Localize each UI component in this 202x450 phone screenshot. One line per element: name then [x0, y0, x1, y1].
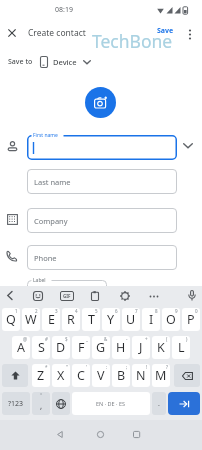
- staticText: ': [86, 364, 88, 370]
- staticText: 3: [55, 308, 58, 314]
- staticText: ": [66, 364, 68, 370]
- button[interactable]: F: [72, 336, 90, 359]
- button[interactable]: [85, 87, 116, 118]
- staticText: X: [57, 367, 65, 384]
- button[interactable]: ?123: [2, 392, 30, 415]
- staticText: B: [117, 367, 126, 384]
- button[interactable]: [8, 29, 16, 37]
- staticText: 0: [195, 308, 198, 314]
- button[interactable]: I: [142, 308, 160, 331]
- staticText: ): [186, 336, 188, 342]
- staticText: Save to: [8, 57, 33, 67]
- button[interactable]: T: [82, 308, 100, 331]
- button[interactable]: P: [182, 308, 200, 331]
- staticText: 5: [95, 308, 98, 314]
- button[interactable]: Save: [157, 26, 174, 36]
- button[interactable]: [7, 291, 13, 300]
- staticText: L: [178, 339, 185, 356]
- button[interactable]: EN · DE · ES: [72, 392, 150, 415]
- button[interactable]: L: [172, 336, 190, 359]
- staticText: Company: [34, 216, 68, 226]
- staticText: ?: [166, 364, 168, 370]
- button[interactable]: Company: [27, 208, 177, 233]
- button[interactable]: V: [92, 364, 110, 387]
- staticText: T: [88, 311, 95, 328]
- button[interactable]: S: [32, 336, 50, 359]
- button[interactable]: [91, 291, 99, 301]
- button[interactable]: O: [162, 308, 180, 331]
- staticText: #: [45, 336, 48, 342]
- button[interactable]: N: [132, 364, 150, 387]
- staticText: ;: [126, 364, 128, 370]
- staticText: J: [139, 339, 143, 356]
- staticText: Y: [107, 311, 115, 328]
- button[interactable]: Z: [32, 364, 50, 387]
- staticText: .: [158, 399, 160, 409]
- button[interactable]: E: [42, 308, 60, 331]
- staticText: Create contact: [28, 27, 86, 39]
- staticText: ,: [40, 400, 43, 411]
- button[interactable]: A: [12, 336, 30, 359]
- button[interactable]: [52, 392, 70, 415]
- button[interactable]: Device: [40, 52, 91, 72]
- staticText: *: [45, 364, 48, 370]
- button[interactable]: [149, 295, 159, 298]
- button[interactable]: [174, 364, 200, 387]
- button[interactable]: Phone: [27, 245, 177, 270]
- staticText: Z: [37, 367, 45, 384]
- staticText: @: [23, 336, 28, 342]
- button[interactable]: Y: [102, 308, 120, 331]
- staticText: +: [145, 336, 148, 342]
- staticText: V: [97, 367, 105, 384]
- button[interactable]: [188, 29, 192, 40]
- staticText: First name: [33, 132, 58, 139]
- button[interactable]: H: [112, 336, 130, 359]
- staticText: R: [67, 311, 75, 328]
- button[interactable]: C: [72, 364, 90, 387]
- staticText: !: [146, 364, 148, 370]
- button[interactable]: W: [22, 308, 40, 331]
- button[interactable]: Last name: [27, 169, 177, 194]
- staticText: °: [40, 392, 43, 399]
- button[interactable]: [188, 290, 196, 302]
- staticText: &: [104, 336, 108, 342]
- staticText: E: [48, 311, 55, 328]
- button[interactable]: X: [52, 364, 70, 387]
- button[interactable]: K: [152, 336, 170, 359]
- staticText: Device: [53, 57, 77, 67]
- staticText: Save: [157, 26, 174, 36]
- staticText: ?123: [8, 399, 24, 409]
- button[interactable]: [2, 364, 28, 387]
- staticText: Phone: [34, 253, 57, 263]
- button[interactable]: [168, 392, 200, 415]
- staticText: I: [149, 311, 154, 328]
- staticText: G: [96, 339, 106, 356]
- button[interactable]: GIF: [60, 291, 74, 301]
- button[interactable]: U: [122, 308, 140, 331]
- button[interactable]: J: [132, 336, 150, 359]
- staticText: 4: [75, 308, 78, 314]
- staticText: M: [155, 367, 167, 384]
- button[interactable]: M: [152, 364, 170, 387]
- button[interactable]: [120, 291, 130, 301]
- staticText: -: [126, 336, 128, 342]
- staticText: Q: [6, 311, 16, 328]
- staticText: $: [65, 336, 68, 342]
- staticText: 1: [15, 308, 18, 314]
- button[interactable]: G: [92, 336, 110, 359]
- button[interactable]: .: [152, 392, 166, 415]
- staticText: W: [25, 311, 37, 328]
- staticText: N: [136, 367, 146, 384]
- button[interactable]: Q: [2, 308, 20, 331]
- button[interactable]: ,: [32, 392, 50, 415]
- button[interactable]: R: [62, 308, 80, 331]
- staticText: 2: [35, 308, 38, 314]
- button[interactable]: [33, 291, 43, 301]
- staticText: Last name: [34, 177, 71, 187]
- staticText: P: [187, 311, 195, 328]
- staticText: D: [56, 339, 66, 356]
- button[interactable]: D: [52, 336, 70, 359]
- staticText: S: [38, 339, 45, 356]
- button[interactable]: B: [112, 364, 130, 387]
- staticText: K: [157, 339, 165, 356]
